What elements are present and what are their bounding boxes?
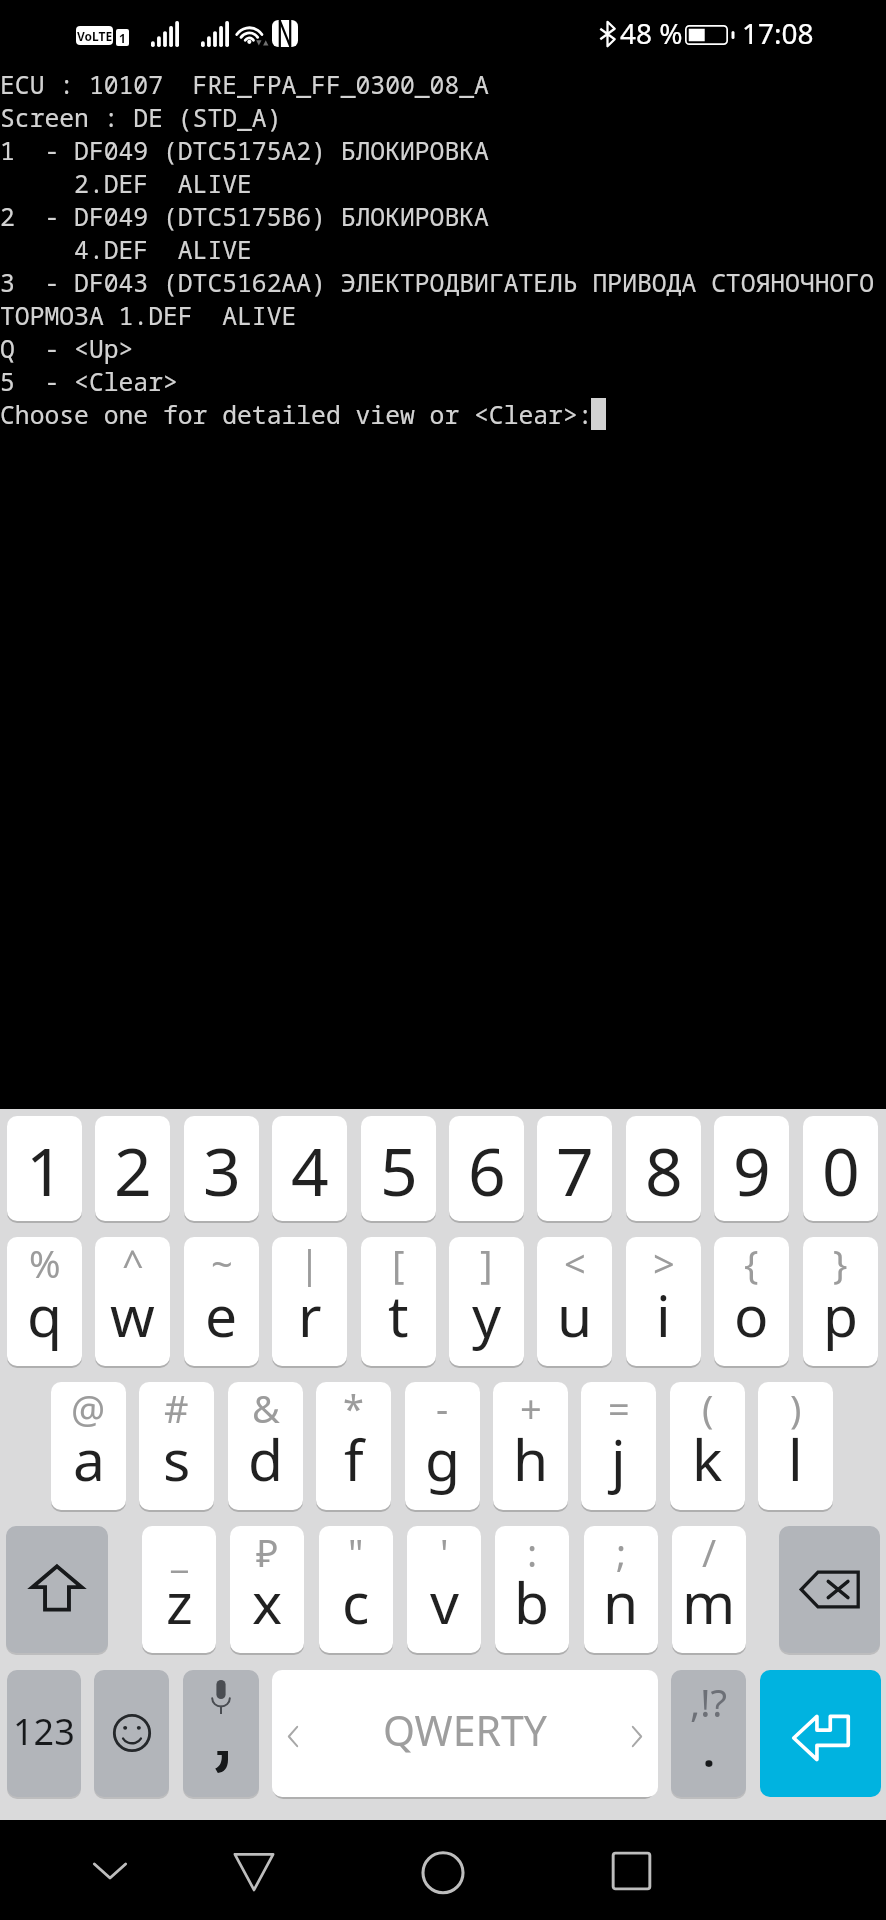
button[interactable]: ; [584, 1526, 658, 1653]
staticText: 2.DEF ALIVE [0, 167, 252, 200]
staticText: m [682, 1563, 736, 1641]
button[interactable]: 7 [537, 1116, 612, 1221]
button[interactable]: Hide keyboard [66, 1828, 154, 1914]
button[interactable]: | [272, 1237, 347, 1366]
button[interactable]: % [7, 1237, 82, 1366]
staticText: 6 [468, 1125, 506, 1215]
staticText: 123 [13, 1707, 75, 1756]
button[interactable]: @ [51, 1382, 126, 1510]
staticText: 5 [380, 1125, 418, 1215]
staticText: g [425, 1420, 461, 1498]
staticText: s [163, 1420, 191, 1498]
button[interactable]: Recents [587, 1828, 675, 1914]
staticText: 9 [733, 1125, 771, 1215]
staticText: 5 - <Clear> [0, 365, 178, 398]
button[interactable]: Home [399, 1828, 487, 1914]
staticText: 2 [114, 1125, 152, 1215]
staticText: " [348, 1526, 364, 1578]
button[interactable]: [ [361, 1237, 436, 1366]
staticText: # [164, 1382, 189, 1434]
button[interactable]: ₽ [230, 1526, 304, 1653]
button[interactable]: 4 [272, 1116, 347, 1221]
button[interactable]: Back [210, 1828, 298, 1914]
button[interactable]: < [537, 1237, 612, 1366]
button[interactable]: } [803, 1237, 878, 1366]
staticText: - [436, 1382, 449, 1434]
button[interactable]: # [139, 1382, 214, 1510]
staticText: f [344, 1420, 364, 1498]
staticText: ~ [211, 1237, 233, 1289]
staticText: . [703, 1722, 715, 1779]
staticText: ^ [122, 1237, 144, 1289]
staticText: QWERTY [383, 1702, 548, 1758]
staticText: x [252, 1563, 283, 1641]
staticText: r [298, 1276, 322, 1354]
button[interactable]: QWERTY [272, 1670, 658, 1797]
staticText: 2 - DF049 (DTC5175B6) БЛОКИРОВКА [0, 200, 489, 233]
button[interactable]: & [228, 1382, 303, 1510]
staticText: d [248, 1420, 284, 1498]
staticText: ) [790, 1382, 802, 1434]
button[interactable]: { [714, 1237, 789, 1366]
button[interactable]: ] [449, 1237, 524, 1366]
staticText: : [527, 1526, 538, 1578]
staticText: 1 [119, 30, 126, 46]
staticText: / [702, 1526, 717, 1578]
staticText: & [252, 1382, 280, 1434]
button[interactable]: > [626, 1237, 701, 1366]
staticText: 8 [645, 1125, 683, 1215]
staticText: ' [440, 1526, 449, 1578]
staticText: c [342, 1563, 370, 1641]
staticText: @ [71, 1382, 106, 1434]
staticText: t [388, 1276, 409, 1354]
button[interactable]: Voice input [183, 1670, 259, 1797]
button[interactable]: 3 [184, 1116, 259, 1221]
staticText: ,!? [690, 1676, 727, 1728]
button[interactable]: 1 [7, 1116, 82, 1221]
staticText: 1 [26, 1125, 64, 1215]
staticText: z [166, 1563, 193, 1641]
button[interactable]: ( [670, 1382, 745, 1510]
button[interactable]: ,!? [671, 1670, 746, 1797]
staticText: w [110, 1276, 155, 1354]
staticText: h [513, 1420, 549, 1498]
staticText: VoLTE [77, 28, 113, 44]
button[interactable]: + [493, 1382, 568, 1510]
button[interactable]: ^ [95, 1237, 170, 1366]
button[interactable]: 0 [803, 1116, 878, 1221]
staticText: = [608, 1382, 630, 1434]
staticText: 4.DEF ALIVE [0, 233, 252, 266]
button[interactable]: / [672, 1526, 746, 1653]
staticText: 3 - DF043 (DTC5162AA) ЭЛЕКТРОДВИГАТЕЛЬ П… [0, 266, 874, 299]
button[interactable]: Emoji [94, 1670, 169, 1797]
button[interactable]: 5 [361, 1116, 436, 1221]
button[interactable]: - [405, 1382, 480, 1510]
staticText: 48 % [620, 14, 683, 52]
staticText: % [29, 1237, 61, 1289]
button[interactable]: 8 [626, 1116, 701, 1221]
staticText: j [611, 1420, 626, 1498]
staticText: < [564, 1237, 586, 1289]
button[interactable]: ~ [184, 1237, 259, 1366]
staticText: n [603, 1563, 639, 1641]
button[interactable]: " [319, 1526, 393, 1653]
button[interactable]: 6 [449, 1116, 524, 1221]
button[interactable]: 123 [7, 1670, 81, 1797]
staticText: e [205, 1276, 238, 1354]
button[interactable]: Enter [760, 1670, 881, 1797]
button[interactable]: 2 [95, 1116, 170, 1221]
button[interactable]: ' [407, 1526, 481, 1653]
staticText: 0 [822, 1125, 860, 1215]
staticText: > [653, 1237, 675, 1289]
staticText: 4 [291, 1125, 329, 1215]
button[interactable]: : [495, 1526, 569, 1653]
button[interactable]: Shift [6, 1526, 108, 1653]
staticText: 17:08 [742, 14, 814, 52]
button[interactable]: _ [142, 1526, 216, 1653]
button[interactable]: Backspace [779, 1526, 880, 1653]
button[interactable]: 9 [714, 1116, 789, 1221]
button[interactable]: = [581, 1382, 656, 1510]
button[interactable]: * [316, 1382, 391, 1510]
staticText: 7 [556, 1125, 594, 1215]
button[interactable]: ) [758, 1382, 833, 1510]
